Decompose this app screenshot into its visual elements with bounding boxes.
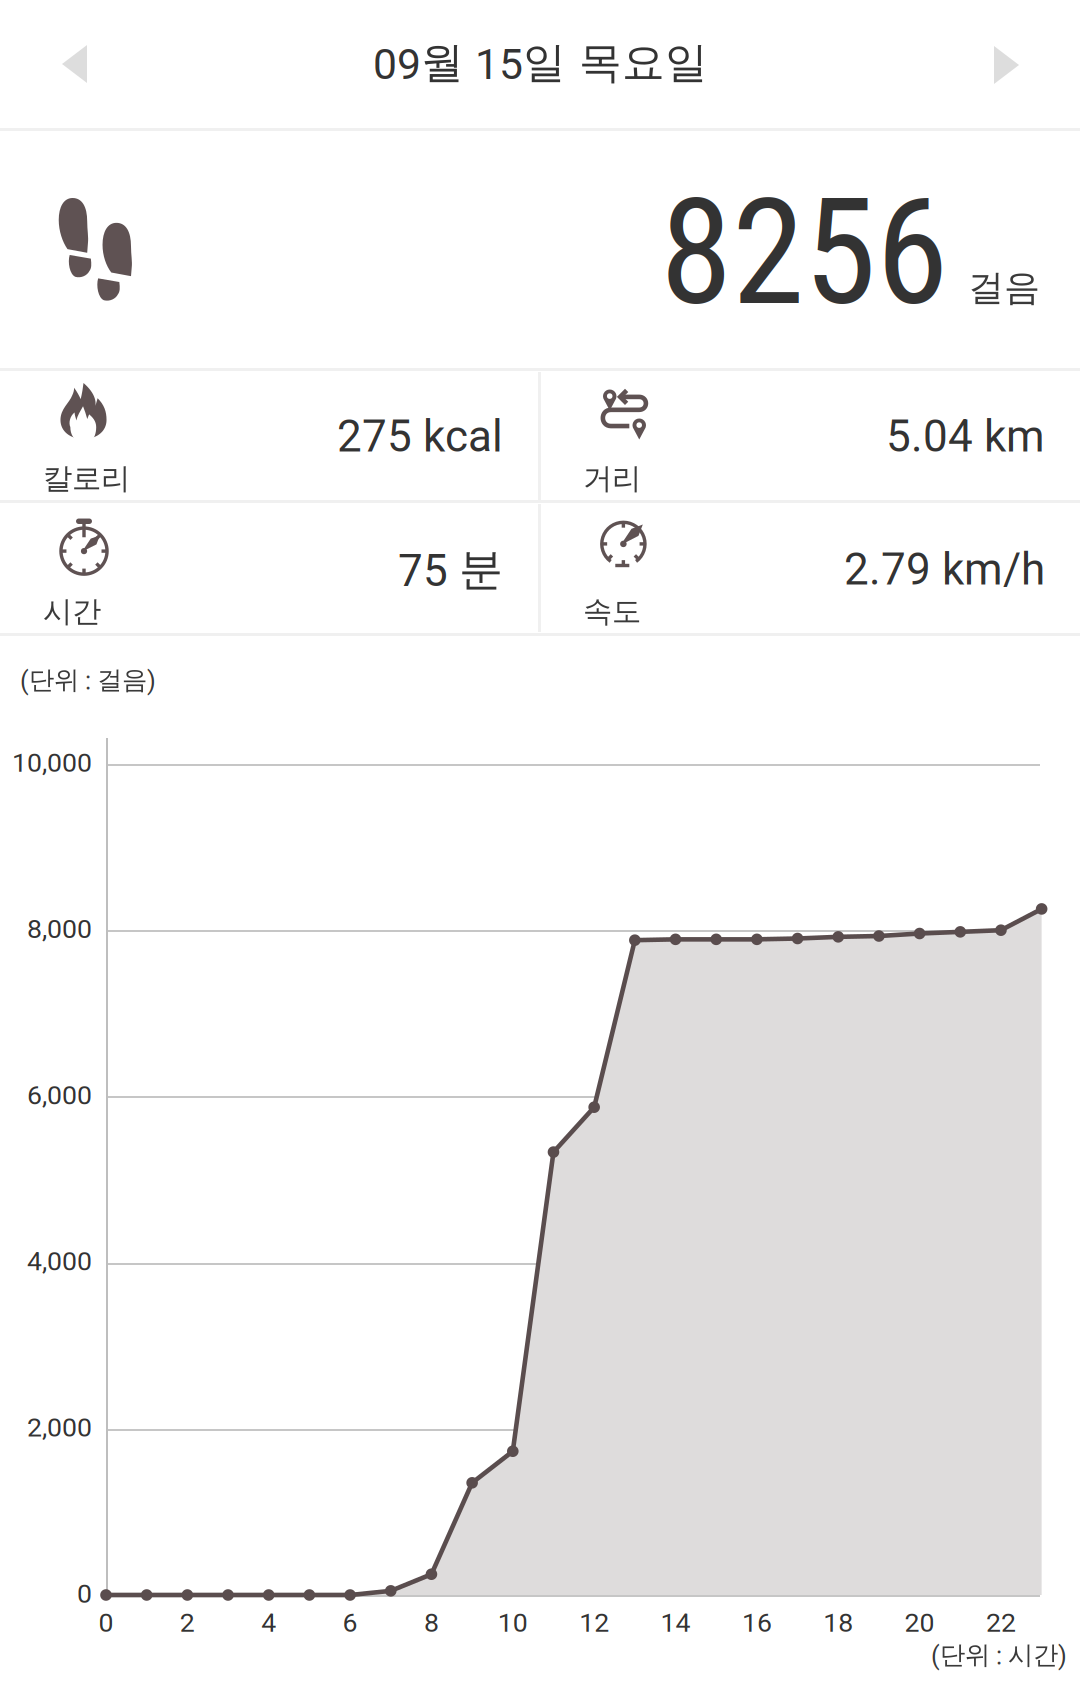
staticText: 275 kcal [337, 411, 503, 462]
staticText: 시간 [43, 593, 101, 630]
staticText: 속도 [583, 593, 641, 630]
staticText: 14 [660, 1607, 690, 1638]
button[interactable]: 속도 [540, 502, 1080, 633]
staticText: 걸음 [968, 265, 1040, 310]
button[interactable]: 거리 [540, 369, 1080, 500]
staticText: 4 [261, 1607, 276, 1638]
staticText: 2,000 [27, 1412, 92, 1443]
staticText: 8,000 [27, 913, 92, 944]
staticText: 75 분 [398, 542, 503, 597]
staticText: 8 [424, 1607, 439, 1638]
staticText: 6 [343, 1607, 358, 1638]
staticText: 12 [579, 1607, 609, 1638]
staticText: 10 [498, 1607, 528, 1638]
staticText: 6,000 [27, 1079, 92, 1111]
staticText: 거리 [583, 460, 641, 497]
staticText: 2 [180, 1607, 195, 1638]
button[interactable]: 칼로리 [0, 369, 538, 500]
staticText: 5.04 km [886, 411, 1045, 462]
staticText: 칼로리 [43, 460, 130, 497]
staticText: 20 [905, 1607, 935, 1638]
staticText: 22 [986, 1607, 1016, 1638]
staticText: 16 [742, 1607, 772, 1638]
button[interactable]: Previous day [20, 17, 129, 111]
staticText: 09월 15일 목요일 [373, 36, 708, 90]
staticText: 8256 [660, 167, 948, 339]
staticText: (단위 : 시간) [931, 1639, 1067, 1671]
staticText: (단위 : 걸음) [20, 664, 156, 696]
staticText: 18 [823, 1607, 853, 1638]
staticText: 10,000 [12, 747, 92, 778]
staticText: 0 [98, 1607, 113, 1638]
staticText: 2.79 km/h [844, 544, 1045, 595]
button[interactable]: Next day [952, 18, 1061, 112]
staticText: 4,000 [27, 1246, 92, 1277]
button[interactable]: 시간 [0, 502, 538, 633]
staticText: 0 [77, 1578, 92, 1609]
